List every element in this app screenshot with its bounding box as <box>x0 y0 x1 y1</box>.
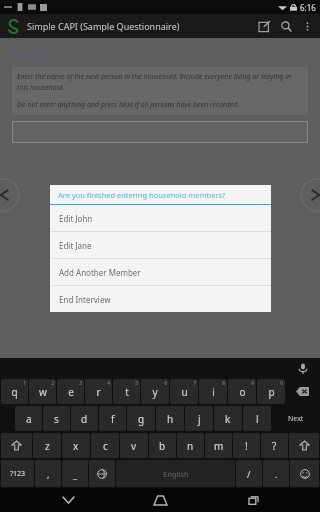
button[interactable]: Up <box>3 16 23 36</box>
button[interactable]: Edit Jane <box>50 232 271 258</box>
button[interactable]: n <box>177 433 204 458</box>
staticText: w <box>39 385 47 399</box>
button[interactable]: h <box>156 406 184 431</box>
staticText: o <box>239 385 246 399</box>
staticText: 5 <box>135 380 138 387</box>
button[interactable]: s <box>43 406 70 431</box>
staticText: Edit John <box>59 213 93 224</box>
button[interactable]: a <box>15 406 42 431</box>
button[interactable]: Edit <box>253 15 275 37</box>
button[interactable]: f <box>99 406 126 431</box>
staticText: Do not enter anything and press Next if … <box>17 100 240 110</box>
button[interactable]: u <box>170 379 198 404</box>
staticText: d <box>81 412 88 426</box>
staticText: 8 <box>222 380 225 387</box>
staticText: Simple CAPI (Sample Questionnaire) <box>27 20 180 32</box>
staticText: r <box>96 385 101 399</box>
staticText: 2 <box>51 380 54 387</box>
staticText: 7 <box>193 380 196 387</box>
button[interactable]: p <box>257 379 285 404</box>
button[interactable]: w <box>29 379 56 404</box>
staticText: q <box>11 385 18 399</box>
button[interactable]: o <box>228 379 256 404</box>
staticText: b <box>159 439 166 453</box>
button[interactable]: More options <box>297 16 317 36</box>
button[interactable]: l <box>243 406 271 431</box>
button[interactable]: End Interview <box>50 286 271 312</box>
button[interactable]: k <box>214 406 242 431</box>
button[interactable]: Previous <box>0 178 20 212</box>
button[interactable]: ? <box>261 433 288 458</box>
staticText: t <box>125 385 129 399</box>
staticText: End Interview <box>59 294 111 305</box>
button[interactable]: Shift <box>289 433 319 458</box>
staticText: Enter the name of the next person in the… <box>17 72 303 92</box>
button[interactable]: d <box>71 406 98 431</box>
staticText: m <box>214 439 224 453</box>
staticText: ?123 <box>10 469 26 479</box>
staticText: 9 <box>251 380 254 387</box>
button[interactable]: Voice input <box>296 361 310 375</box>
button[interactable]: Recents <box>238 488 266 512</box>
staticText: x <box>73 439 79 453</box>
staticText: u <box>181 385 188 399</box>
button[interactable]: / <box>236 460 262 487</box>
button[interactable]: j <box>185 406 213 431</box>
button[interactable]: ! <box>233 433 260 458</box>
button[interactable]: c <box>91 433 119 458</box>
button[interactable]: Next <box>300 178 320 212</box>
staticText: a <box>26 412 32 426</box>
button[interactable]: v <box>120 433 148 458</box>
staticText: n <box>187 439 194 453</box>
button[interactable]: , <box>35 460 61 487</box>
button[interactable] <box>12 121 308 143</box>
button[interactable]: Search <box>275 15 297 37</box>
button[interactable]: b <box>149 433 176 458</box>
staticText: p <box>268 385 275 399</box>
staticText: s <box>54 412 59 426</box>
staticText: h <box>167 412 174 426</box>
staticText: 6:16 <box>300 2 316 13</box>
staticText: ? <box>272 439 277 453</box>
button[interactable]: m <box>205 433 232 458</box>
button[interactable]: i <box>199 379 227 404</box>
staticText: 4 <box>107 380 110 387</box>
staticText: , <box>47 468 50 480</box>
button[interactable]: English <box>116 460 235 487</box>
staticText: i <box>212 385 215 399</box>
button[interactable]: Shift <box>1 433 32 458</box>
button[interactable]: ?123 <box>1 460 34 487</box>
staticText: j <box>198 412 201 426</box>
staticText: k <box>225 412 231 426</box>
button[interactable]: e <box>57 379 84 404</box>
button[interactable]: t <box>113 379 140 404</box>
button[interactable]: x <box>62 433 90 458</box>
staticText: ! <box>245 439 248 453</box>
button[interactable]: Backspace <box>286 379 319 404</box>
button[interactable]: Change language <box>89 460 115 487</box>
staticText: Name <box>12 46 44 61</box>
button[interactable]: Add Another Member <box>50 259 271 285</box>
button[interactable]: r <box>85 379 112 404</box>
button[interactable]: Next <box>272 406 319 431</box>
button[interactable]: Hide keyboard <box>54 488 82 512</box>
button[interactable]: _ <box>62 460 88 487</box>
staticText: 0 <box>280 380 283 387</box>
button[interactable]: z <box>33 433 61 458</box>
button[interactable]: Edit John <box>50 205 271 231</box>
staticText: g <box>138 412 145 426</box>
button[interactable]: y <box>141 379 169 404</box>
button[interactable]: q <box>1 379 28 404</box>
staticText: Next <box>288 414 304 424</box>
button[interactable]: Emoji <box>290 460 319 487</box>
staticText: . <box>275 468 278 480</box>
staticText: l <box>256 412 259 426</box>
staticText: 1 <box>23 380 26 387</box>
staticText: f <box>111 412 115 426</box>
staticText: _ <box>73 468 77 480</box>
button[interactable]: . <box>263 460 289 487</box>
button[interactable]: g <box>127 406 155 431</box>
button[interactable]: Home <box>146 488 174 512</box>
staticText: Edit Jane <box>59 240 92 251</box>
staticText: e <box>68 385 74 399</box>
